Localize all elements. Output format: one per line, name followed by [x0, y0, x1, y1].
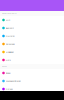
staticText: Wireless & networks	[2, 12, 17, 14]
staticText: Device	[2, 65, 7, 67]
button[interactable]: Display	[0, 69, 64, 77]
button[interactable]: Sound & notification	[0, 77, 64, 85]
button[interactable]: Mobile plan	[0, 48, 64, 56]
staticText: Display	[6, 72, 11, 74]
staticText: Wi-Fi	[6, 19, 10, 21]
staticText: Bluetooth	[6, 27, 14, 29]
button[interactable]: Wi-Fi	[0, 16, 64, 24]
button[interactable]: Bluetooth	[0, 24, 64, 32]
staticText: SIM cards	[6, 35, 15, 37]
staticText: Sound & notification	[6, 80, 21, 82]
staticText: Mobile plan	[6, 51, 14, 53]
button[interactable]: Data usage	[0, 40, 64, 48]
staticText: Data usage	[6, 43, 15, 45]
button[interactable]: More	[0, 56, 64, 64]
staticText: More	[6, 59, 11, 61]
button[interactable]: Storage	[0, 85, 64, 93]
button[interactable]: SIM cards	[0, 32, 64, 40]
staticText: Storage	[6, 88, 13, 90]
